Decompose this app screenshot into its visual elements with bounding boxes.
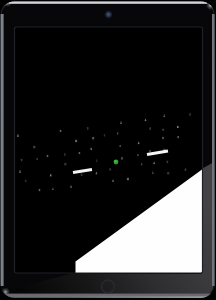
button[interactable]: Front camera bbox=[100, 6, 117, 23]
button[interactable]: Home bbox=[100, 278, 117, 295]
button[interactable]: Display bbox=[15, 27, 203, 273]
